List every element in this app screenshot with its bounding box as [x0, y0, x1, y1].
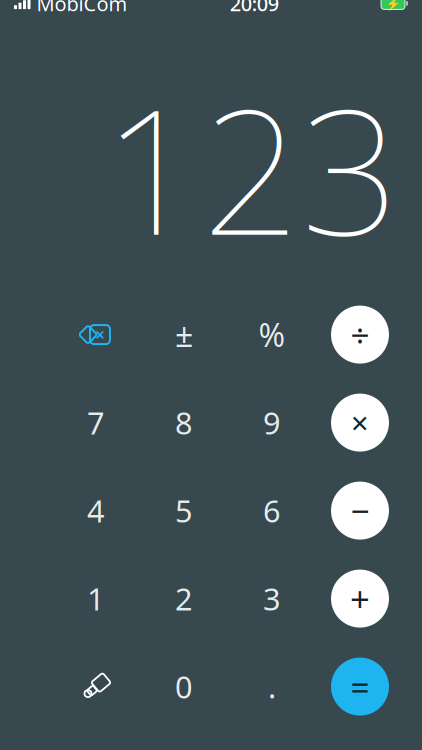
staticText: 5	[175, 490, 193, 531]
button[interactable]: %	[228, 291, 316, 379]
button[interactable]: 4	[52, 467, 140, 555]
button[interactable]: Backspace	[52, 291, 140, 379]
staticText: 1	[87, 578, 105, 619]
staticText: 3	[263, 578, 281, 619]
staticText: %	[258, 313, 285, 356]
staticText: 8	[175, 402, 193, 443]
staticText: ±	[175, 313, 193, 356]
staticText: ÷	[350, 312, 369, 357]
button[interactable]: Multiply	[316, 379, 404, 467]
staticText: 123	[103, 52, 400, 283]
button[interactable]: Theme	[52, 643, 140, 731]
button[interactable]: Plus	[316, 555, 404, 643]
staticText: =	[350, 664, 369, 709]
staticText: 0	[175, 666, 193, 707]
button[interactable]: 3	[228, 555, 316, 643]
button[interactable]: 8	[140, 379, 228, 467]
staticText: 4	[87, 490, 105, 531]
staticText: 2	[175, 578, 193, 619]
button[interactable]: 9	[228, 379, 316, 467]
button[interactable]: 0	[140, 643, 228, 731]
staticText: ×	[351, 402, 369, 443]
button[interactable]: 2	[140, 555, 228, 643]
button[interactable]: 1	[52, 555, 140, 643]
button[interactable]: 5	[140, 467, 228, 555]
staticText: 9	[263, 402, 281, 443]
button[interactable]: 7	[52, 379, 140, 467]
staticText: ×	[95, 323, 105, 346]
staticText: .	[268, 666, 276, 707]
staticText: 20:09	[230, 0, 279, 17]
button[interactable]: 6	[228, 467, 316, 555]
button[interactable]: ±	[140, 291, 228, 379]
button[interactable]: Divide	[316, 291, 404, 379]
button[interactable]: Minus	[316, 467, 404, 555]
staticText: 7	[87, 402, 105, 443]
staticText: +	[350, 576, 370, 622]
button[interactable]: .	[228, 643, 316, 731]
staticText: ⚡	[385, 0, 400, 10]
staticText: −	[350, 488, 369, 533]
button[interactable]: Equals	[316, 643, 404, 731]
staticText: 6	[263, 490, 281, 531]
staticText: MobiCom	[36, 0, 127, 17]
